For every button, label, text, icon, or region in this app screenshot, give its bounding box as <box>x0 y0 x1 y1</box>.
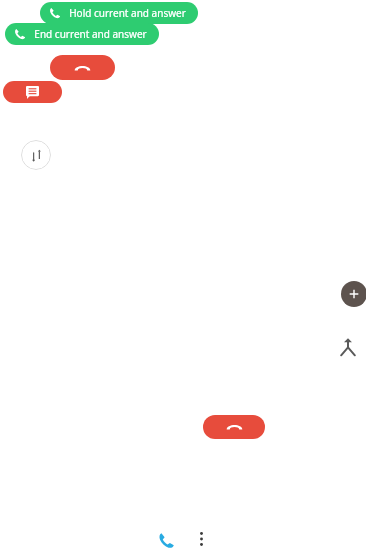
button[interactable]: End call <box>50 55 115 80</box>
staticText: Hold current and answer <box>69 6 186 20</box>
button[interactable]: End current and answer <box>5 23 159 45</box>
button[interactable]: Swap calls <box>21 140 51 170</box>
button[interactable]: Merge calls <box>337 336 359 358</box>
staticText: End current and answer <box>34 27 147 41</box>
button[interactable]: Hold current and answer <box>40 2 198 24</box>
button[interactable]: Reject with message <box>3 81 62 103</box>
button[interactable]: More options <box>192 528 210 550</box>
button[interactable]: End call <box>203 415 265 439</box>
button[interactable]: Call <box>155 529 177 551</box>
button[interactable]: Add call <box>341 281 366 307</box>
